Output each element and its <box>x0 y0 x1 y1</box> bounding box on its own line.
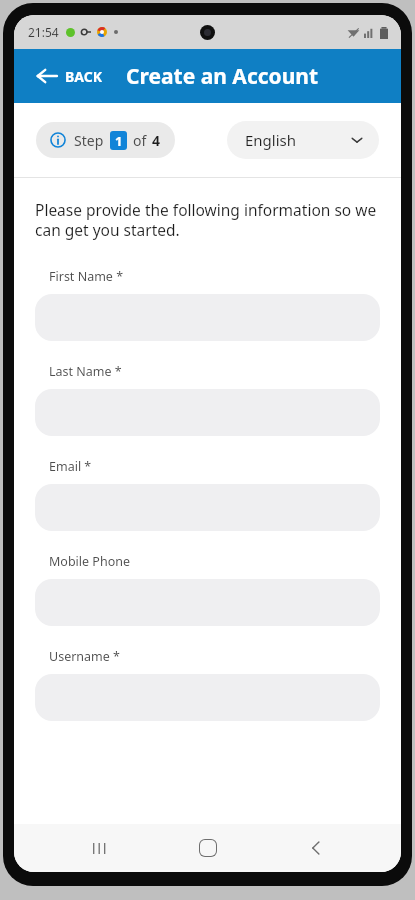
staticText: Username * <box>49 648 120 665</box>
staticText: 21:54 <box>28 24 59 40</box>
button[interactable]: Recent apps <box>75 824 123 872</box>
staticText: of <box>133 131 147 150</box>
staticText: BACK <box>65 67 103 86</box>
staticText: Email * <box>49 458 92 475</box>
staticText: 1 <box>115 132 123 150</box>
button[interactable]: Home <box>184 824 232 872</box>
button[interactable]: Step <box>36 122 175 158</box>
button[interactable]: English <box>227 121 379 159</box>
staticText: Step <box>74 131 104 150</box>
staticText: Please provide the following information… <box>35 199 380 241</box>
staticText: First Name * <box>49 268 124 285</box>
staticText: Mobile Phone <box>49 553 130 570</box>
button[interactable]: Back <box>292 824 340 872</box>
staticText: Last Name * <box>49 363 122 380</box>
staticText: 4 <box>152 131 161 150</box>
staticText: Create an Account <box>126 62 319 91</box>
button[interactable]: BACK <box>32 59 107 93</box>
staticText: English <box>245 130 297 150</box>
